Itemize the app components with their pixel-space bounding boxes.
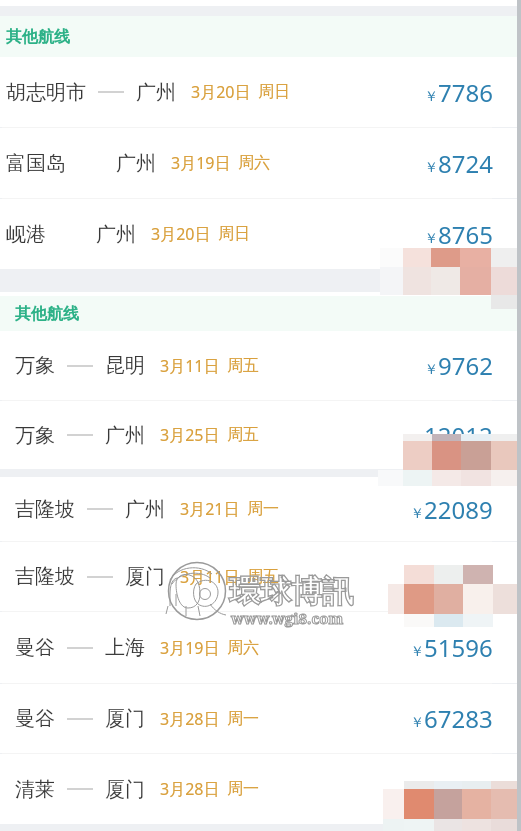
- staticText: 其他航线: [6, 27, 70, 47]
- staticText: 厦门: [125, 564, 165, 589]
- staticText: 3月28日: [160, 778, 220, 800]
- button[interactable]: 吉隆坡: [0, 542, 521, 611]
- button[interactable]: 其他航线: [0, 296, 521, 331]
- staticText: 12012: [424, 419, 493, 452]
- staticText: 广州: [116, 151, 156, 176]
- button[interactable]: 曼谷: [0, 684, 521, 753]
- button[interactable]: 万象: [0, 401, 521, 469]
- button[interactable]: 清莱: [0, 754, 521, 824]
- staticText: 周六: [227, 638, 259, 658]
- staticText: 9762: [438, 349, 493, 382]
- staticText: 周五: [247, 567, 279, 587]
- staticText: 周日: [218, 224, 250, 244]
- staticText: 3月19日: [171, 152, 231, 174]
- button[interactable]: 吉隆坡: [0, 477, 521, 541]
- staticText: 3月11日: [160, 355, 220, 377]
- button[interactable]: 岘港: [0, 199, 521, 269]
- staticText: 周五: [227, 425, 259, 445]
- staticText: 吉隆坡: [15, 564, 75, 589]
- staticText: 广州: [105, 423, 145, 448]
- staticText: 广州: [125, 497, 165, 522]
- staticText: 7786: [438, 76, 493, 109]
- staticText: 广州: [136, 80, 176, 105]
- staticText: 广州: [96, 222, 136, 247]
- staticText: 其他航线: [15, 304, 79, 324]
- staticText: 3月28日: [160, 708, 220, 730]
- staticText: 周一: [247, 499, 279, 519]
- staticText: 8724: [438, 147, 493, 180]
- staticText: 曼谷: [15, 706, 55, 731]
- staticText: ￥: [410, 714, 424, 732]
- staticText: 3月25日: [160, 424, 220, 446]
- staticText: 昆明: [105, 353, 145, 378]
- staticText: 67283: [424, 702, 493, 735]
- staticText: 周五: [227, 356, 259, 376]
- staticText: ￥: [424, 230, 438, 248]
- staticText: 周一: [227, 779, 259, 799]
- staticText: 胡志明市: [6, 80, 86, 105]
- staticText: 富国岛: [6, 151, 66, 176]
- button[interactable]: 胡志明市: [0, 57, 521, 127]
- staticText: www.wgi8.com: [231, 608, 344, 628]
- staticText: 厦门: [105, 777, 145, 802]
- staticText: 3月19日: [160, 637, 220, 659]
- staticText: ￥: [410, 643, 424, 661]
- staticText: 万象: [15, 423, 55, 448]
- staticText: ￥: [410, 572, 424, 590]
- staticText: 3月21日: [180, 498, 240, 520]
- staticText: ￥: [410, 431, 424, 449]
- staticText: 環球博訊: [229, 572, 353, 611]
- button[interactable]: 富国岛: [0, 128, 521, 198]
- staticText: 68481: [424, 773, 493, 806]
- staticText: ￥: [410, 505, 424, 523]
- staticText: 曼谷: [15, 635, 55, 660]
- staticText: 周六: [238, 153, 270, 173]
- staticText: 厦门: [105, 706, 145, 731]
- staticText: ￥: [424, 159, 438, 177]
- staticText: 周一: [227, 709, 259, 729]
- staticText: 3月11日: [180, 566, 240, 588]
- staticText: 8765: [438, 218, 493, 251]
- staticText: 上海: [105, 635, 145, 660]
- staticText: 岘港: [6, 222, 46, 247]
- staticText: 3月20日: [191, 81, 251, 103]
- button[interactable]: 万象: [0, 331, 521, 400]
- button[interactable]: 曼谷: [0, 612, 521, 683]
- staticText: ￥: [424, 88, 438, 106]
- button[interactable]: 其他航线: [0, 16, 521, 57]
- staticText: 3月20日: [151, 223, 211, 245]
- staticText: ￥: [424, 361, 438, 379]
- staticText: 22089: [424, 493, 493, 526]
- staticText: ￥: [410, 785, 424, 803]
- staticText: 万象: [15, 353, 55, 378]
- staticText: 51596: [424, 631, 493, 664]
- staticText: 清莱: [15, 777, 55, 802]
- staticText: 23456: [424, 560, 493, 593]
- staticText: 吉隆坡: [15, 497, 75, 522]
- staticText: 周日: [258, 82, 290, 102]
